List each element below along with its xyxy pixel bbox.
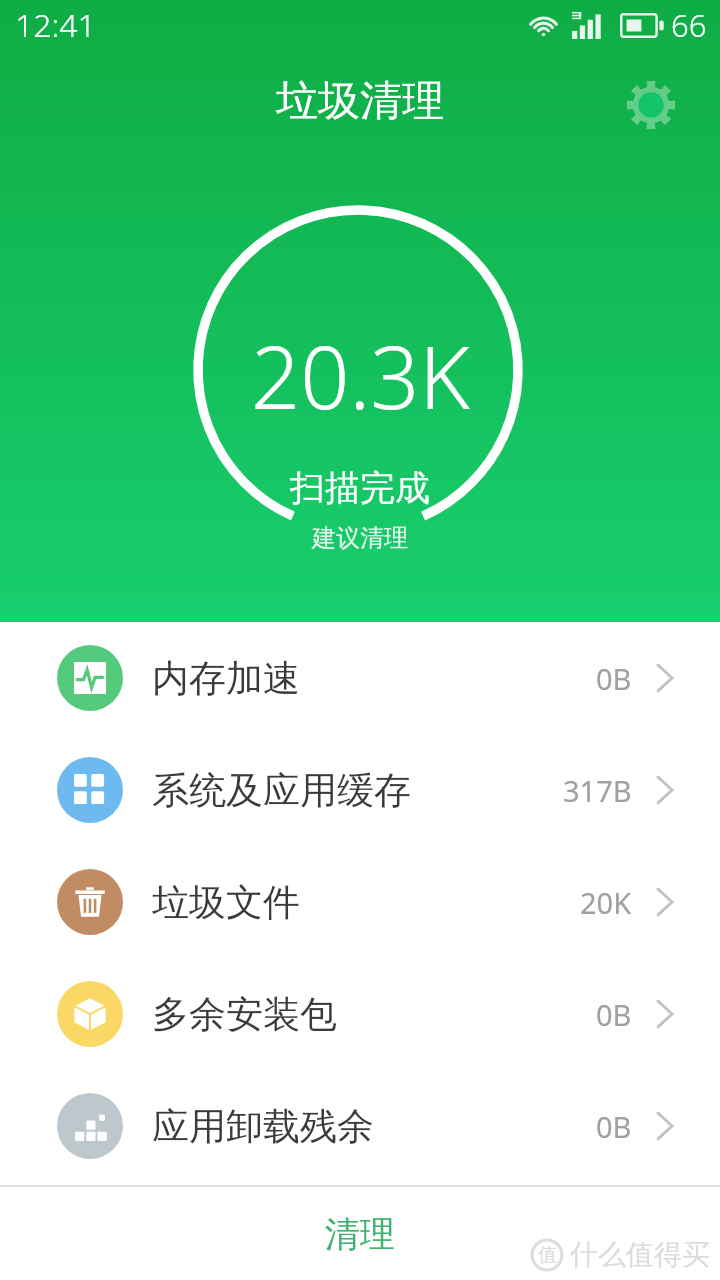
staticText: 清理: [325, 1212, 395, 1256]
staticText: 应用卸载残余: [152, 1103, 374, 1150]
staticText: 20K: [580, 883, 632, 922]
staticText: 建议清理: [312, 523, 408, 553]
staticText: 值: [538, 1243, 557, 1267]
staticText: 0B: [596, 1107, 632, 1146]
button[interactable]: 垃圾文件: [0, 846, 720, 958]
button[interactable]: 系统及应用缓存: [0, 734, 720, 846]
staticText: 多余安装包: [152, 991, 337, 1038]
button[interactable]: 多余安装包: [0, 958, 720, 1070]
staticText: 317B: [563, 771, 632, 810]
staticText: 20.3K: [251, 317, 470, 434]
staticText: 扫描完成: [290, 466, 430, 510]
staticText: 0B: [596, 995, 632, 1034]
staticText: 系统及应用缓存: [152, 767, 411, 814]
staticText: 66: [671, 4, 707, 46]
staticText: 内存加速: [152, 655, 300, 702]
staticText: 垃圾文件: [152, 879, 300, 926]
button[interactable]: 清理: [0, 1187, 720, 1280]
button[interactable]: Settings: [622, 76, 680, 134]
staticText: 垃圾清理: [276, 75, 444, 128]
staticText: 12:41: [15, 3, 96, 47]
staticText: 什么值得买: [570, 1237, 710, 1272]
staticText: 0B: [596, 659, 632, 698]
button[interactable]: 内存加速: [0, 622, 720, 734]
button[interactable]: 应用卸载残余: [0, 1070, 720, 1182]
